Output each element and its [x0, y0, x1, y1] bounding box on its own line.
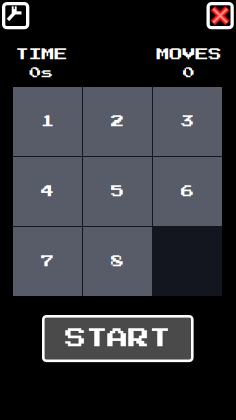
staticText: START	[65, 328, 170, 349]
button[interactable]: Close	[208, 4, 232, 28]
staticText: 0	[183, 67, 195, 79]
button[interactable]: Settings	[4, 4, 28, 28]
staticText: 1	[41, 115, 54, 128]
staticText: 3	[181, 115, 194, 128]
staticText: MOVES	[156, 48, 221, 61]
staticText: 7	[41, 255, 54, 268]
staticText: 4	[41, 185, 54, 198]
staticText: 6	[181, 185, 194, 198]
staticText: 2	[111, 115, 124, 128]
staticText: 8	[111, 255, 124, 268]
button[interactable]: START	[43, 316, 192, 361]
staticText: 0s	[29, 67, 53, 79]
staticText: 5	[111, 185, 124, 198]
staticText: TIME	[15, 48, 67, 61]
